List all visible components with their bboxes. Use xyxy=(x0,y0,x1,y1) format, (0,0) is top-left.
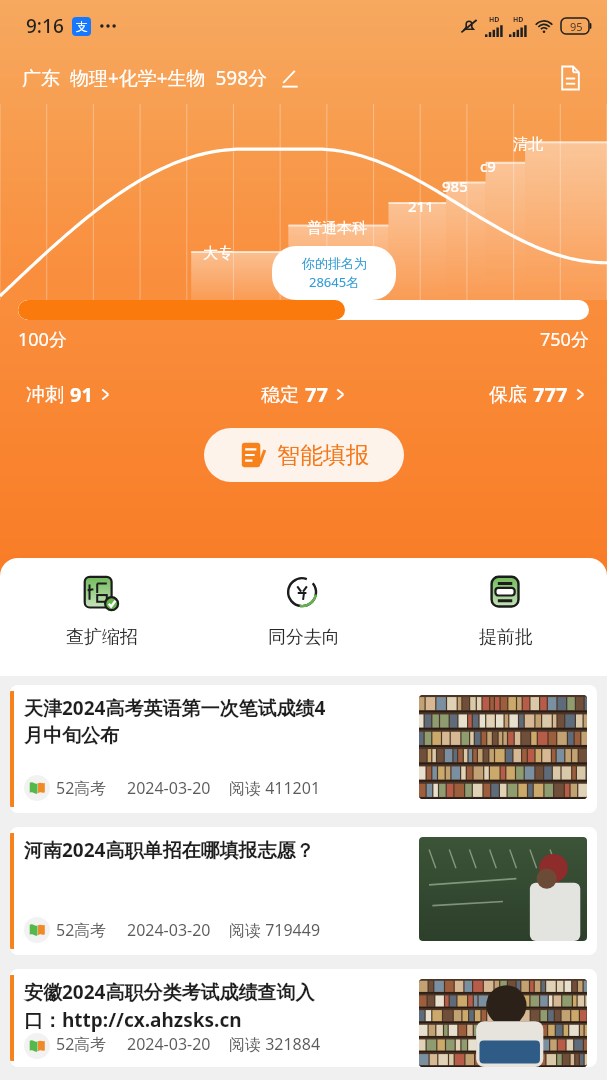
button[interactable]: 智能填报 xyxy=(204,428,404,482)
staticText: 77 xyxy=(305,381,328,408)
staticText: 提前批 xyxy=(479,626,533,649)
button[interactable]: 保底 xyxy=(489,381,587,408)
staticText: 211 xyxy=(408,196,434,216)
staticText: HD xyxy=(513,15,524,25)
staticText: 9:16 xyxy=(26,13,64,39)
staticText: HD xyxy=(489,15,500,25)
button[interactable]: 河南2024高职单招在哪填报志愿？ xyxy=(10,827,597,955)
staticText: 同分去向 xyxy=(268,626,340,649)
staticText: 52高考 xyxy=(56,919,107,941)
button[interactable]: 安徽2024高职分类考试成绩查询入 口：http://cx.ahzsks.cn xyxy=(10,969,597,1067)
staticText: 保底 xyxy=(489,383,527,407)
button[interactable]: 天津2024高考英语第一次笔试成绩4 月中旬公布 xyxy=(10,685,597,813)
staticText: 52高考 xyxy=(56,1033,107,1055)
staticText: 2024-03-20 xyxy=(127,777,211,799)
staticText: 91 xyxy=(70,381,93,408)
staticText: 52高考 xyxy=(56,777,107,799)
staticText: 天津2024高考英语第一次笔试成绩4 月中旬公布 xyxy=(24,695,326,748)
staticText: 普通本科 xyxy=(307,219,367,238)
button[interactable]: 稳定 xyxy=(261,381,347,408)
staticText: 2024-03-20 xyxy=(127,1033,211,1055)
staticText: 安徽2024高职分类考试成绩查询入 口：http://cx.ahzsks.cn xyxy=(24,979,315,1033)
staticText: 智能填报 xyxy=(277,441,369,470)
button[interactable]: 同分去向 xyxy=(203,572,405,676)
staticText: 大专 xyxy=(203,244,233,263)
staticText: 100分 xyxy=(18,327,67,352)
staticText: 支 xyxy=(76,19,88,34)
staticText: 阅读 411201 xyxy=(229,777,321,799)
button[interactable]: 广东 物理+化学+生物 598分 xyxy=(22,65,302,91)
staticText: c9 xyxy=(480,156,496,176)
button[interactable]: 查扩缩招 xyxy=(0,572,203,676)
staticText: 查扩缩招 xyxy=(66,626,138,649)
staticText: 你的排名为 xyxy=(302,255,367,271)
button[interactable]: 提前批 xyxy=(405,572,607,676)
button[interactable]: 报告 xyxy=(553,61,587,95)
staticText: 稳定 xyxy=(261,383,299,407)
staticText: 2024-03-20 xyxy=(127,919,211,941)
staticText: 冲刺 xyxy=(26,383,64,407)
staticText: 阅读 719449 xyxy=(229,919,321,941)
staticText: 28645名 xyxy=(309,273,360,291)
staticText: 750分 xyxy=(540,327,589,352)
staticText: 95 xyxy=(570,19,583,34)
staticText: 阅读 321884 xyxy=(229,1033,321,1055)
staticText: 广东 物理+化学+生物 598分 xyxy=(22,65,268,91)
staticText: 985 xyxy=(442,176,468,196)
staticText: 河南2024高职单招在哪填报志愿？ xyxy=(24,837,315,863)
staticText: 清北 xyxy=(513,135,543,154)
staticText: 777 xyxy=(533,381,568,408)
button[interactable]: 冲刺 xyxy=(26,381,112,408)
